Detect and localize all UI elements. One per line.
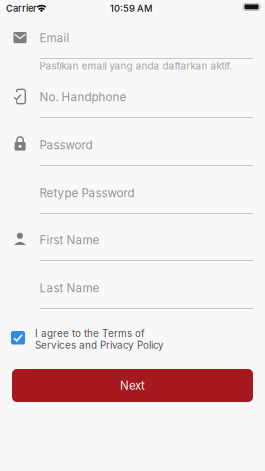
staticText: Next	[120, 379, 145, 392]
staticText: Password	[39, 138, 92, 152]
staticText: I agree to the Terms of	[35, 327, 145, 339]
staticText: Pastikan email yang anda daftarkan aktif…	[39, 60, 232, 72]
staticText: No. Handphone	[39, 90, 126, 104]
staticText: Services and Privacy Policy	[35, 339, 164, 351]
staticText: 10:59 AM	[110, 3, 153, 14]
staticText: Carrier	[6, 3, 37, 14]
button[interactable]: Next	[12, 369, 253, 402]
staticText: First Name	[39, 233, 99, 247]
staticText: Last Name	[39, 281, 99, 295]
staticText: Email	[39, 31, 69, 45]
button[interactable]: I agree to the Terms of	[11, 331, 191, 359]
staticText: Retype Password	[39, 186, 134, 200]
